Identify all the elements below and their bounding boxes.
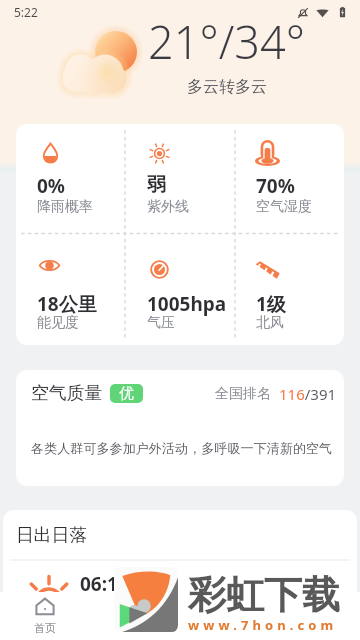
staticText: www.7hon.com — [188, 616, 338, 634]
staticText: 紫外线 — [147, 198, 189, 216]
button[interactable]: 0% — [16, 124, 126, 235]
staticText: 优 — [119, 384, 134, 403]
staticText: 空气湿度 — [256, 198, 312, 216]
staticText: 1005hpa — [147, 291, 227, 317]
staticText: 多云转多云 — [187, 77, 267, 97]
staticText: 5:22 — [14, 4, 38, 20]
staticText: 18公里 — [37, 291, 97, 317]
staticText: 06:18 — [80, 571, 129, 597]
staticText: 北风 — [256, 314, 284, 332]
button[interactable]: 弱 — [126, 124, 235, 235]
staticText: 彩虹下载 — [188, 571, 340, 619]
button[interactable]: 1级 — [235, 235, 344, 345]
staticText: 弱 — [147, 173, 166, 197]
staticText: 气压 — [147, 314, 175, 332]
button[interactable]: Tab — [180, 592, 270, 640]
staticText: 70% — [256, 173, 295, 199]
staticText: 21°/34° — [148, 11, 305, 72]
staticText: 全国排名 — [215, 385, 271, 403]
button[interactable]: 1005hpa — [126, 235, 235, 345]
button[interactable]: 空气质量 — [16, 370, 344, 486]
button[interactable]: 18公里 — [16, 235, 126, 345]
staticText: 降雨概率 — [37, 198, 93, 216]
button[interactable]: 首页 — [0, 592, 90, 640]
button[interactable]: Tab — [90, 592, 180, 640]
staticText: 各类人群可多参加户外活动，多呼吸一下清新的空气 — [31, 440, 333, 457]
button[interactable]: 70% — [235, 124, 344, 235]
staticText: 能见度 — [37, 314, 79, 332]
staticText: 1级 — [256, 291, 286, 317]
staticText: 日出日落 — [16, 524, 88, 546]
button[interactable]: Tab — [270, 592, 360, 640]
staticText: 116/391 — [279, 384, 337, 404]
staticText: 首页 — [34, 621, 56, 635]
staticText: 0% — [37, 173, 66, 199]
staticText: 空气质量 — [31, 382, 103, 404]
